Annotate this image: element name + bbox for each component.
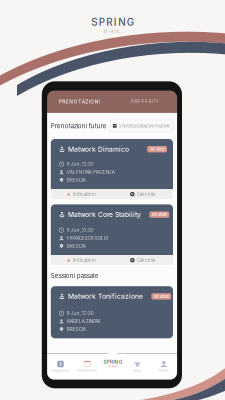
staticText: SPRING — [103, 359, 122, 365]
staticText: ANGELA ZINONI — [67, 319, 100, 324]
staticText: Istruttore — [150, 147, 165, 152]
staticText: Prenotazioni future — [51, 122, 107, 130]
staticText: 9 Jun, 12:30 — [67, 311, 94, 316]
staticText: Indicazioni — [73, 257, 96, 263]
staticText: BRESCIA — [67, 243, 86, 249]
staticText: Cancella — [137, 191, 155, 197]
staticText: PREFERITI — [131, 99, 158, 105]
staticText: Cancella — [137, 257, 155, 263]
staticText: pilates — [108, 365, 117, 368]
button[interactable]: Prenotazioni — [74, 361, 101, 372]
staticText: VALENTINA PIACENZA — [67, 169, 115, 175]
staticText: BRESCIA — [67, 177, 86, 183]
staticText: BRESCIA — [67, 327, 86, 332]
staticText: Profilo — [159, 369, 169, 372]
staticText: pilates — [103, 29, 122, 34]
staticText: Indicazioni — [73, 191, 96, 197]
staticText: Matwork Tonificazione — [68, 292, 143, 300]
button[interactable]: Shop — [124, 361, 150, 372]
staticText: Programma — [51, 369, 69, 373]
button[interactable]: PREFERITI — [112, 91, 177, 113]
button[interactable]: Programma — [47, 361, 74, 373]
staticText: Prenotazioni — [77, 368, 97, 372]
staticText: 9 Jun, 12:30 — [67, 227, 94, 233]
staticText: Sessioni passate — [51, 272, 99, 279]
staticText: Matwork Dinamico — [68, 145, 129, 153]
button[interactable]: Indicazioni — [51, 255, 112, 265]
button[interactable]: Cancella — [112, 255, 173, 265]
staticText: Matwork Core Stability — [68, 211, 141, 219]
staticText: SPRING — [91, 16, 134, 28]
staticText: Istruttore — [154, 294, 169, 299]
staticText: FRANCESCA SOLDI — [67, 235, 108, 241]
button[interactable]: Sincronizza programmazione — [110, 120, 173, 132]
staticText: 9 Jun, 12:30 — [67, 161, 94, 167]
staticText: Sincronizza programmazione — [119, 123, 170, 128]
staticText: Istruttore — [152, 212, 167, 217]
button[interactable]: Profilo — [150, 361, 177, 372]
button[interactable]: Cancella — [112, 189, 173, 199]
staticText: Shop — [133, 369, 141, 372]
button[interactable]: PRENOTAZIONI — [47, 91, 112, 113]
button[interactable]: Indicazioni — [51, 189, 112, 199]
staticText: PRENOTAZIONI — [59, 99, 100, 105]
